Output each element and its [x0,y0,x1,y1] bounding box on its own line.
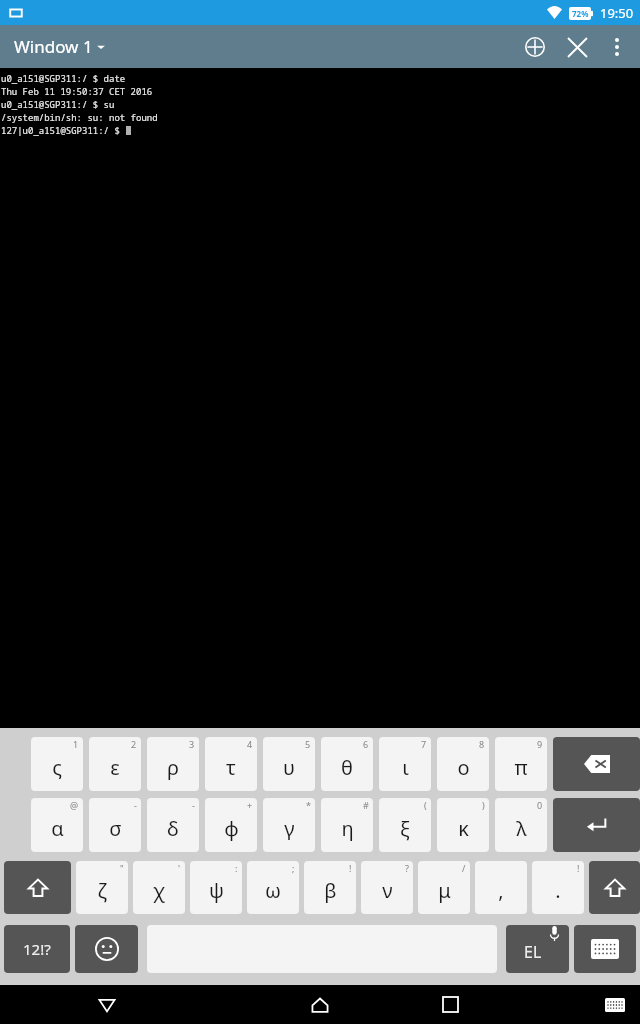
staticText: 7 [421,738,427,750]
staticText: # [363,799,369,811]
staticText: ) [482,799,485,811]
staticText: γ [284,815,295,842]
button[interactable]: EL [506,925,569,973]
staticText: ρ [167,754,179,781]
staticText: ς [52,754,62,781]
button[interactable]: 2 [89,737,141,791]
button[interactable]: Back [0,985,213,1024]
staticText: τ [226,754,236,781]
button[interactable]: Hide keyboard [590,985,640,1024]
button[interactable]: Emoji [75,925,138,973]
staticText: 2 [131,738,137,750]
staticText: Thu Feb 11 19:50:37 CET 2016 [1,85,153,97]
button[interactable]: ' [133,861,185,914]
button[interactable]: - [89,798,141,852]
staticText: π [514,754,528,781]
staticText: @ [70,799,79,811]
button[interactable]: ) [437,798,489,852]
staticText: u0_a151@SGP311:/ $ date [1,72,126,84]
staticText: : [235,862,238,874]
staticText: υ [283,754,295,781]
staticText: u0_a151@SGP311:/ $ su [1,98,115,110]
staticText: 72% [572,8,589,19]
staticText: 127|u0_a151@SGP311:/ $ [1,124,126,136]
button[interactable]: - [147,798,199,852]
staticText: ! [577,862,580,874]
staticText: 12!? [23,939,51,959]
button[interactable]: 0 [495,798,547,852]
staticText: ? [405,862,409,874]
staticText: 1 [73,738,79,750]
staticText: /system/bin/sh: su: not found [1,111,158,123]
staticText: 5 [305,738,311,750]
button[interactable]: @ [31,798,83,852]
button[interactable]: 8 [437,737,489,791]
button[interactable]: : [190,861,242,914]
staticText: ' [178,862,181,874]
staticText: ψ [209,877,224,904]
button[interactable]: ? [361,861,413,914]
staticText: ο [457,754,470,781]
button[interactable]: 1 [31,737,83,791]
button[interactable]: Change keyboard [574,925,636,973]
button[interactable]: shift [589,861,640,914]
staticText: θ [341,754,353,781]
button[interactable]: More options [598,28,636,66]
button[interactable]: Close window [556,26,598,68]
staticText: ζ [97,877,107,904]
staticText: - [192,799,195,811]
button[interactable]: , [475,861,527,914]
button[interactable]: ! [532,861,584,914]
staticText: ι [402,754,409,781]
button[interactable]: + [205,798,257,852]
button[interactable]: ( [379,798,431,852]
button[interactable]: 7 [379,737,431,791]
button[interactable]: # [321,798,373,852]
button[interactable]: 6 [321,737,373,791]
button[interactable]: shift [4,861,71,914]
button[interactable]: ; [247,861,299,914]
staticText: 4 [247,738,253,750]
staticText: 0 [537,799,543,811]
staticText: η [341,815,354,842]
staticText: + [247,799,253,811]
button[interactable]: 12!? [4,925,70,973]
staticText: 3 [189,738,195,750]
staticText: - [134,799,137,811]
button[interactable]: New window [514,26,556,68]
button[interactable]: Window 1 [10,31,109,62]
button[interactable]: / [418,861,470,914]
button[interactable]: enter [553,798,640,852]
staticText: EL [524,941,542,963]
staticText: χ [153,877,165,904]
staticText: κ [458,815,469,842]
staticText: / [462,862,466,874]
button[interactable]: 5 [263,737,315,791]
button[interactable]: Recent apps [395,985,505,1024]
staticText: . [555,877,561,904]
staticText: α [51,815,64,842]
button[interactable]: backspace [553,737,640,791]
staticText: * [306,799,311,811]
staticText: ; [292,862,295,874]
button[interactable]: 3 [147,737,199,791]
button[interactable]: 9 [495,737,547,791]
button[interactable]: ! [304,861,356,914]
staticText: " [120,862,124,874]
staticText: λ [516,815,527,842]
staticText: ω [265,877,281,904]
staticText: σ [109,815,122,842]
staticText: ξ [400,815,410,842]
staticText: 19:50 [600,4,634,22]
staticText: β [324,877,337,904]
button[interactable]: 4 [205,737,257,791]
button[interactable]: Home [265,985,375,1024]
staticText: δ [167,815,179,842]
staticText: φ [224,815,239,842]
staticText: , [498,877,504,904]
button[interactable]: " [76,861,128,914]
button[interactable]: * [263,798,315,852]
staticText: ε [110,754,120,781]
staticText: 6 [363,738,369,750]
